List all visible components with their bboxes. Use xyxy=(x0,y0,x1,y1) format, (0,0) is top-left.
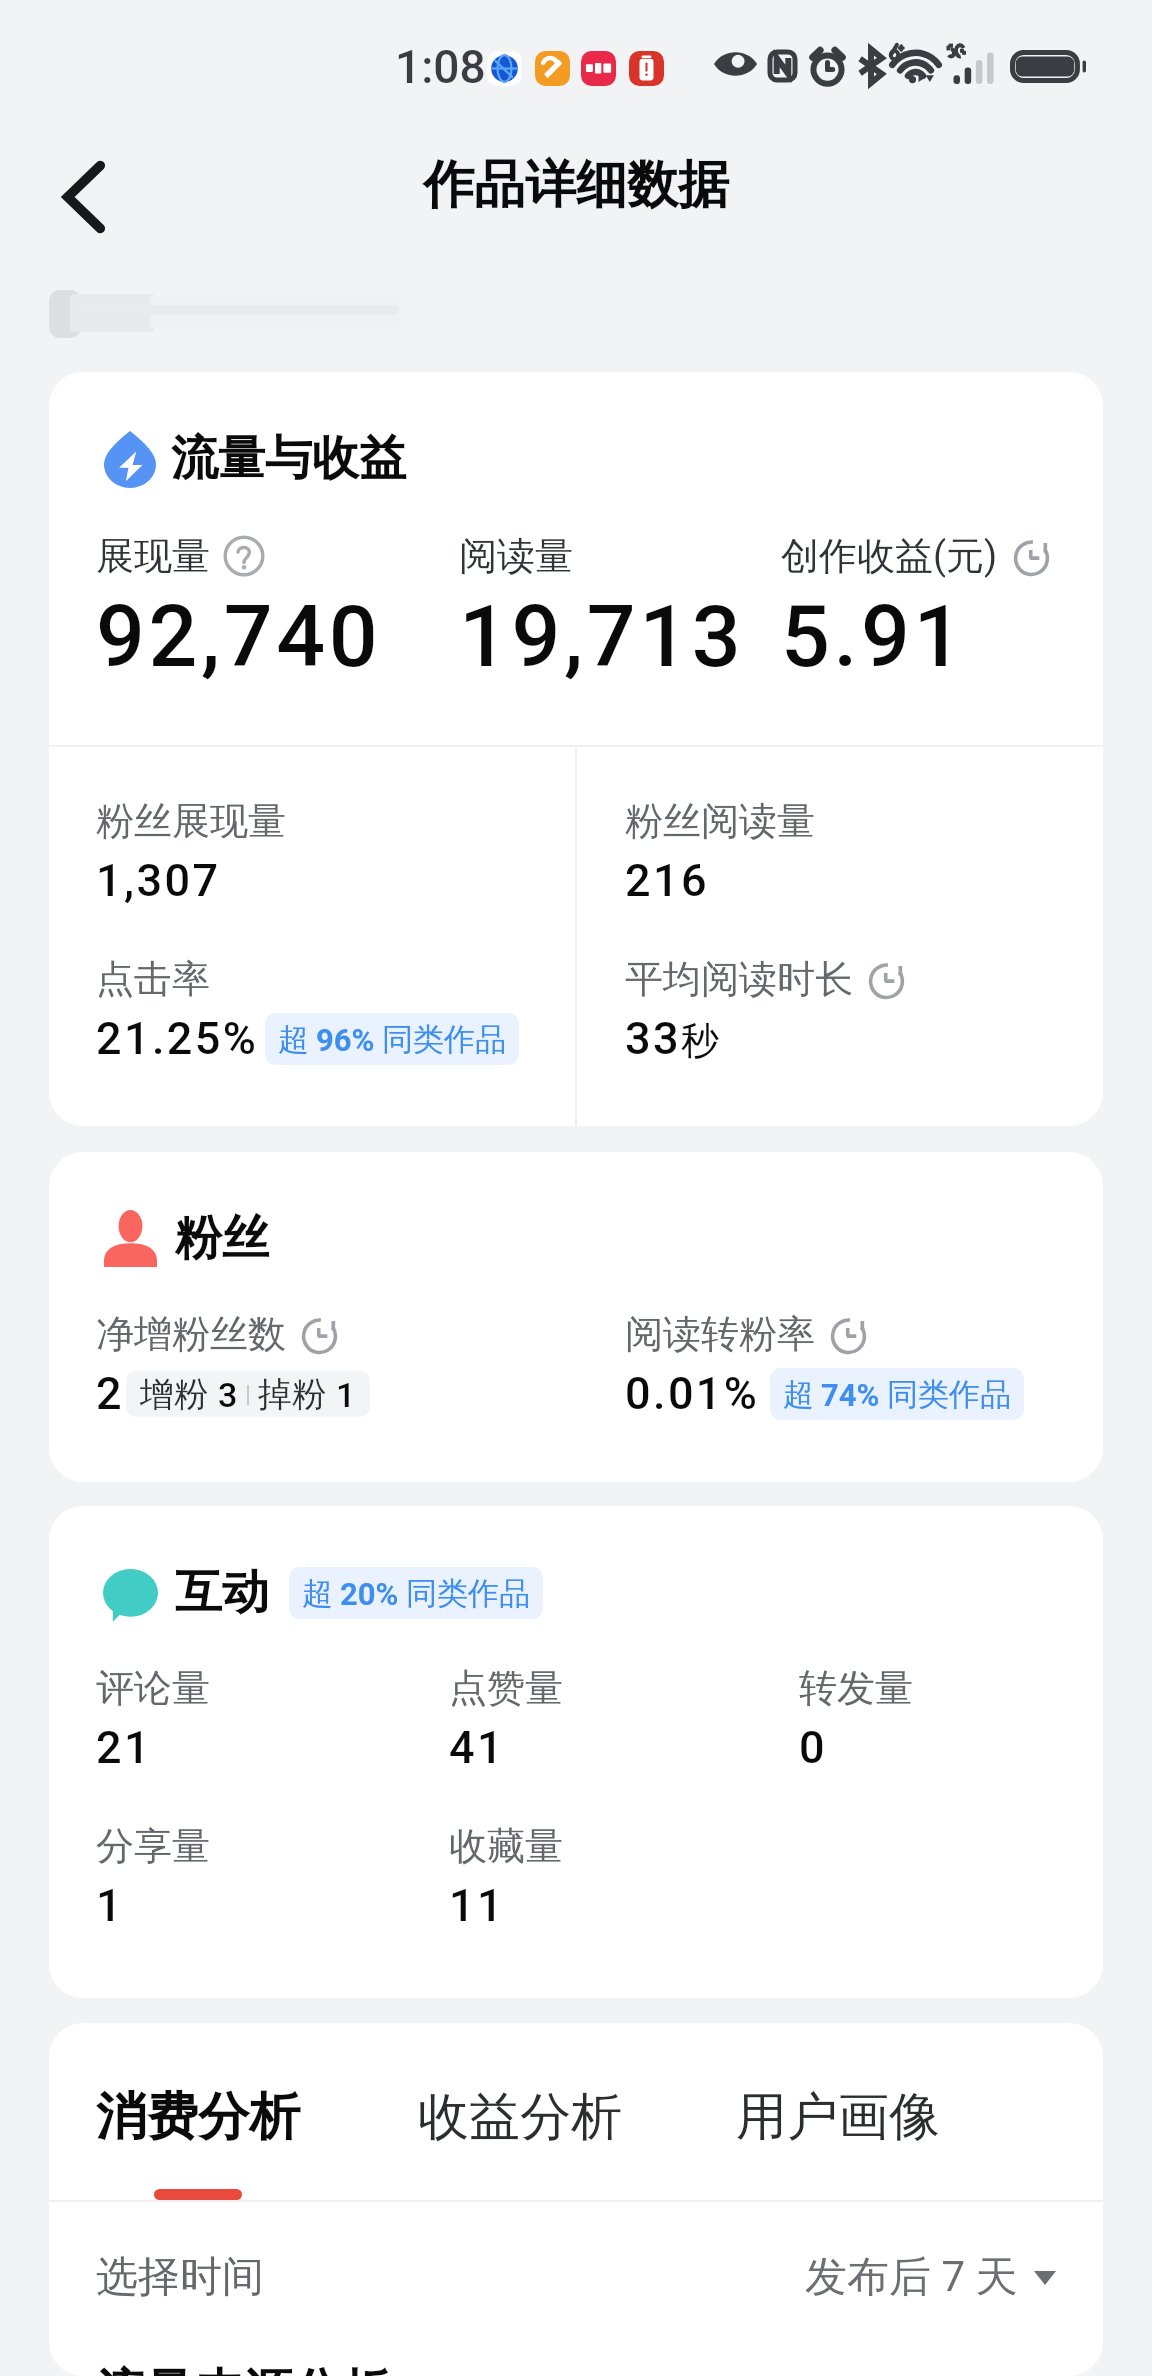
staticText: 粉丝展现量 xyxy=(96,797,286,845)
staticText: 同类作品 xyxy=(887,1375,1011,1414)
staticText: 19,713 xyxy=(459,586,745,687)
staticText: 3 xyxy=(218,1375,238,1415)
staticText: 评论量 xyxy=(96,1664,210,1712)
staticText: 净增粉丝数 xyxy=(96,1310,286,1358)
staticText: 阅读转粉率 xyxy=(625,1310,815,1358)
staticText: 粉丝阅读量 xyxy=(625,797,815,845)
staticText: 216 xyxy=(625,854,709,907)
button[interactable]: Data updated periodically xyxy=(829,1314,868,1355)
staticText: 5.91 xyxy=(781,586,966,687)
button[interactable]: 发布后 7 天 xyxy=(805,2239,1056,2316)
staticText: 秒 xyxy=(681,1017,719,1065)
staticText: 平均阅读时长 xyxy=(625,955,853,1003)
staticText: 0 xyxy=(799,1721,827,1774)
staticText: 点击率 xyxy=(96,955,210,1003)
staticText: 展现量 xyxy=(96,532,210,580)
staticText: 流量来源分析 xyxy=(96,2362,390,2376)
staticText: 用户画像 xyxy=(736,2085,940,2149)
staticText: 92,740 xyxy=(96,586,382,687)
staticText: 1,307 xyxy=(96,854,221,907)
button[interactable]: 消费分析 xyxy=(96,2085,300,2200)
button[interactable]: Data updated periodically xyxy=(1012,536,1051,577)
staticText: 41 xyxy=(449,1721,505,1774)
staticText: 同类作品 xyxy=(406,1574,530,1613)
staticText: 11 xyxy=(449,1879,505,1932)
staticText: 超 xyxy=(278,1020,309,1059)
staticText: 1 xyxy=(96,1879,124,1932)
staticText: 21.25% xyxy=(96,1012,259,1065)
staticText: 发布后 7 天 xyxy=(805,2251,1018,2304)
button[interactable]: Data updated periodically xyxy=(300,1314,339,1355)
staticText: 转发量 xyxy=(799,1664,913,1712)
staticText: 分享量 xyxy=(96,1822,210,1870)
staticText: 2 xyxy=(96,1367,122,1420)
staticText: 流量与收益 xyxy=(171,429,406,488)
staticText: 粉丝 xyxy=(175,1209,269,1268)
button[interactable]: Back xyxy=(40,146,128,234)
staticText: 增粉 xyxy=(140,1373,208,1416)
staticText: 超 xyxy=(783,1375,814,1414)
staticText: 同类作品 xyxy=(382,1020,506,1059)
staticText: 74% xyxy=(821,1377,880,1413)
button[interactable]: 收益分析 xyxy=(418,2085,622,2189)
button[interactable]: Help xyxy=(224,536,264,576)
staticText: 互动 xyxy=(175,1563,269,1622)
staticText: 1:08 xyxy=(395,40,486,94)
button[interactable]: 用户画像 xyxy=(736,2085,940,2189)
staticText: 超 xyxy=(302,1574,333,1613)
staticText: 21 xyxy=(96,1721,152,1774)
staticText: 创作收益(元) xyxy=(781,532,998,580)
staticText: 20% xyxy=(340,1576,399,1612)
staticText: 1 xyxy=(336,1375,356,1415)
staticText: 点赞量 xyxy=(449,1664,563,1712)
staticText: 选择时间 xyxy=(96,2251,264,2304)
staticText: 消费分析 xyxy=(96,2085,300,2149)
staticText: 阅读量 xyxy=(459,532,573,580)
button[interactable]: Data updated periodically xyxy=(867,959,906,1000)
staticText: 33 xyxy=(625,1012,681,1065)
staticText: 收益分析 xyxy=(418,2085,622,2149)
staticText: 0.01% xyxy=(625,1367,760,1420)
staticText: 收藏量 xyxy=(449,1822,563,1870)
staticText: 作品详细数据 xyxy=(423,153,729,217)
staticText: 96% xyxy=(316,1022,375,1058)
staticText: 掉粉 xyxy=(258,1373,326,1416)
